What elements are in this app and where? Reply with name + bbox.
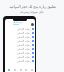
button[interactable]: عيادة الأسنان (5, 47, 35, 51)
staticText: عيادة الأسنان (17, 35, 31, 38)
button[interactable]: عيادة الأسنان (5, 43, 35, 47)
button[interactable]: عيادة الأسنان (5, 59, 35, 63)
staticText: الرياض (25, 30, 31, 31)
staticText: الرياض (25, 34, 31, 35)
staticText: عيادة الأسنان (17, 39, 31, 42)
staticText: عيادة الأسنان (17, 43, 31, 46)
staticText: مرحبا بك (13, 20, 23, 24)
button[interactable]: عيادة الأسنان (5, 31, 35, 35)
staticText: بكل سهولة وسرعة (20, 10, 44, 14)
staticText: عيادة الأسنان (17, 55, 31, 58)
button[interactable]: عيادة الأسنان (5, 55, 35, 59)
staticText: الرياض (25, 54, 31, 55)
button[interactable]: عيادة الأسنان (5, 39, 35, 43)
button[interactable]: عيادة الأسنان (5, 35, 35, 39)
staticText: الرياض (25, 50, 31, 51)
button[interactable]: Tab (18, 67, 23, 72)
staticText: تطبيق زيارة يتيح لك حجز المواعيد (9, 4, 56, 9)
staticText: عيادة الأسنان (17, 31, 31, 34)
button[interactable]: Tab (29, 67, 34, 72)
button[interactable]: Tab (12, 67, 17, 72)
button[interactable]: عيادة الأسنان (5, 51, 35, 55)
staticText: الرياض (25, 58, 31, 59)
staticText: الرياض (25, 62, 31, 63)
button[interactable]: عيادة الأسنان (5, 27, 35, 31)
staticText: عيادة الأسنان (17, 47, 31, 50)
staticText: عيادة الأسنان (17, 51, 31, 54)
staticText: الرياض (25, 42, 31, 43)
staticText: عيادة الأسنان (17, 59, 31, 62)
staticText: الرياض (25, 46, 31, 47)
staticText: عيادة الأسنان (17, 27, 31, 30)
button[interactable]: Profile (31, 23, 34, 26)
button[interactable]: Tab (23, 67, 28, 72)
button[interactable]: Tab (6, 67, 11, 72)
staticText: الرياض (25, 38, 31, 39)
